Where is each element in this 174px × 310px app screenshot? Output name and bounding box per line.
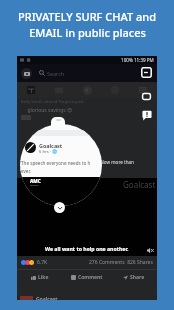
button[interactable]: Window: [141, 91, 152, 102]
button[interactable]: Collapse: [54, 202, 65, 213]
staticText: theatres: [30, 184, 39, 187]
staticText: ever.: [21, 168, 31, 174]
staticText: Kelly Smith shared Target's post: [21, 99, 84, 105]
button[interactable]: Messenger: [141, 67, 152, 78]
staticText: 100% 11:39 PM: [121, 57, 154, 63]
staticText: The speech everyone needs to hear - Now …: [20, 159, 134, 165]
button[interactable]: Drag handle: [51, 117, 65, 128]
button[interactable]: Alert: [141, 109, 153, 121]
staticText: PRIVATELY SURF CHAT and: [18, 9, 156, 24]
button[interactable]: Camera: [21, 68, 32, 79]
button[interactable]: Like: [17, 271, 63, 284]
staticText: 6.7K: [37, 259, 48, 266]
staticText: The speech everyone needs to h: [21, 160, 91, 166]
button[interactable]: Comment: [63, 271, 110, 284]
staticText: glorious savings 😍: [21, 107, 73, 114]
staticText: Goalcast: [39, 142, 63, 149]
button[interactable]: Tab 5: [129, 82, 157, 98]
button[interactable]: Tab 3: [73, 82, 101, 98]
staticText: AMC: [30, 178, 41, 184]
button[interactable]: Share: [110, 271, 157, 284]
button[interactable]: Tab 1: [17, 82, 45, 98]
staticText: Goalcast: [123, 179, 156, 190]
staticText: 6 hrs · 🌐: [39, 149, 58, 155]
staticText: We all want to help one another.: [45, 245, 129, 252]
staticText: Like: [38, 274, 49, 281]
staticText: Share: [130, 274, 145, 281]
staticText: Goalcast: [36, 296, 58, 300]
staticText: Search: [47, 70, 65, 77]
button[interactable]: Mute: [147, 247, 154, 254]
staticText: EMAIL in public places: [29, 25, 146, 40]
staticText: ever.: [20, 166, 30, 172]
staticText: Comment: [78, 274, 103, 281]
staticText: 276 Comments 826 Shares: [89, 259, 153, 266]
